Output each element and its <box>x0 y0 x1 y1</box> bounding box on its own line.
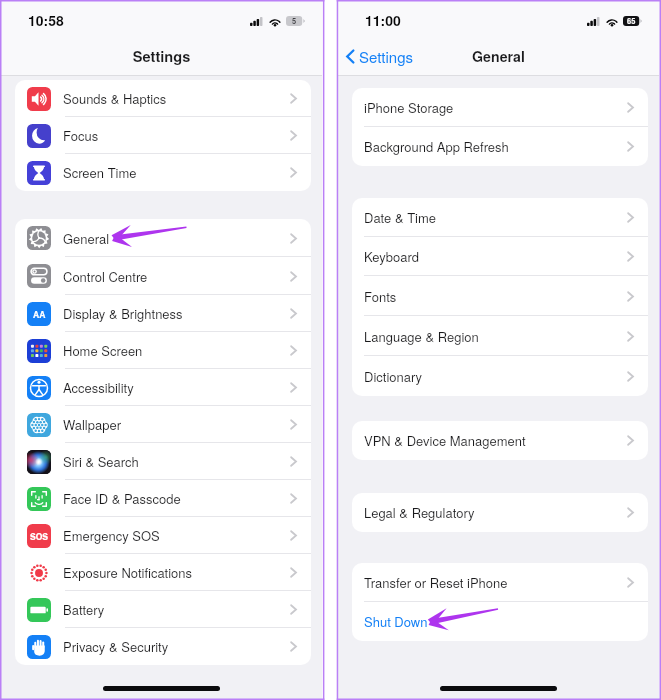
button[interactable]: Legal & Regulatory <box>352 493 648 532</box>
button[interactable]: Keyboard <box>352 237 648 276</box>
button[interactable]: Wallpaper <box>15 406 311 443</box>
staticText: Control Centre <box>63 267 148 286</box>
staticText: Background App Refresh <box>364 137 509 156</box>
button[interactable]: Face ID & Passcode <box>15 480 311 517</box>
button[interactable]: Focus <box>15 117 311 154</box>
button[interactable]: Dictionary <box>352 356 648 396</box>
button[interactable]: VPN & Device Management <box>352 421 648 460</box>
button[interactable]: Date & Time <box>352 198 648 237</box>
button[interactable]: AA <box>15 295 311 332</box>
staticText: Exposure Notifications <box>63 563 193 582</box>
staticText: Transfer or Reset iPhone <box>364 573 508 592</box>
button[interactable]: Back to Settings <box>343 43 417 70</box>
staticText: SOS <box>30 530 48 542</box>
button[interactable]: Background App Refresh <box>352 127 648 166</box>
staticText: Display & Brightness <box>63 304 183 323</box>
staticText: Accessibility <box>63 378 134 397</box>
button[interactable]: Privacy & Security <box>15 628 311 665</box>
staticText: 11:00 <box>365 10 401 30</box>
button[interactable]: Shut Down <box>352 602 648 641</box>
staticText: General <box>338 46 659 66</box>
button[interactable]: iPhone Storage <box>352 88 648 127</box>
staticText: Legal & Regulatory <box>364 503 475 522</box>
staticText: Home Screen <box>63 341 143 360</box>
staticText: 65 <box>627 16 636 26</box>
staticText: General <box>63 229 110 248</box>
button[interactable]: Transfer or Reset iPhone <box>352 563 648 602</box>
staticText: Screen Time <box>63 163 137 182</box>
staticText: Privacy & Security <box>63 637 169 656</box>
button[interactable]: General <box>15 219 311 257</box>
staticText: 5 <box>292 16 297 26</box>
staticText: VPN & Device Management <box>364 431 526 450</box>
button[interactable]: Battery <box>15 591 311 628</box>
staticText: Dictionary <box>364 367 423 386</box>
staticText: 10:58 <box>28 10 64 30</box>
staticText: Siri & Search <box>63 452 139 471</box>
button[interactable]: Home Screen <box>15 332 311 369</box>
button[interactable]: Sounds & Haptics <box>15 80 311 117</box>
staticText: Focus <box>63 126 99 145</box>
button[interactable]: Language & Region <box>352 316 648 356</box>
button[interactable]: SOS <box>15 517 311 554</box>
staticText: iPhone Storage <box>364 98 454 117</box>
staticText: Settings <box>1 46 322 67</box>
button[interactable]: Control Centre <box>15 257 311 295</box>
staticText: Face ID & Passcode <box>63 489 181 508</box>
button[interactable]: Accessibility <box>15 369 311 406</box>
staticText: Settings <box>359 46 414 67</box>
staticText: Battery <box>63 600 105 619</box>
staticText: Sounds & Haptics <box>63 89 167 108</box>
button[interactable]: Fonts <box>352 276 648 316</box>
staticText: Shut Down <box>364 612 428 631</box>
button[interactable]: Screen Time <box>15 154 311 191</box>
button[interactable]: Exposure Notifications <box>15 554 311 591</box>
staticText: Wallpaper <box>63 415 121 434</box>
staticText: Date & Time <box>364 208 437 227</box>
staticText: AA <box>33 308 46 320</box>
staticText: Keyboard <box>364 247 419 266</box>
staticText: Emergency SOS <box>63 526 160 545</box>
staticText: Fonts <box>364 287 397 306</box>
staticText: Language & Region <box>364 327 479 346</box>
button[interactable]: Siri & Search <box>15 443 311 480</box>
